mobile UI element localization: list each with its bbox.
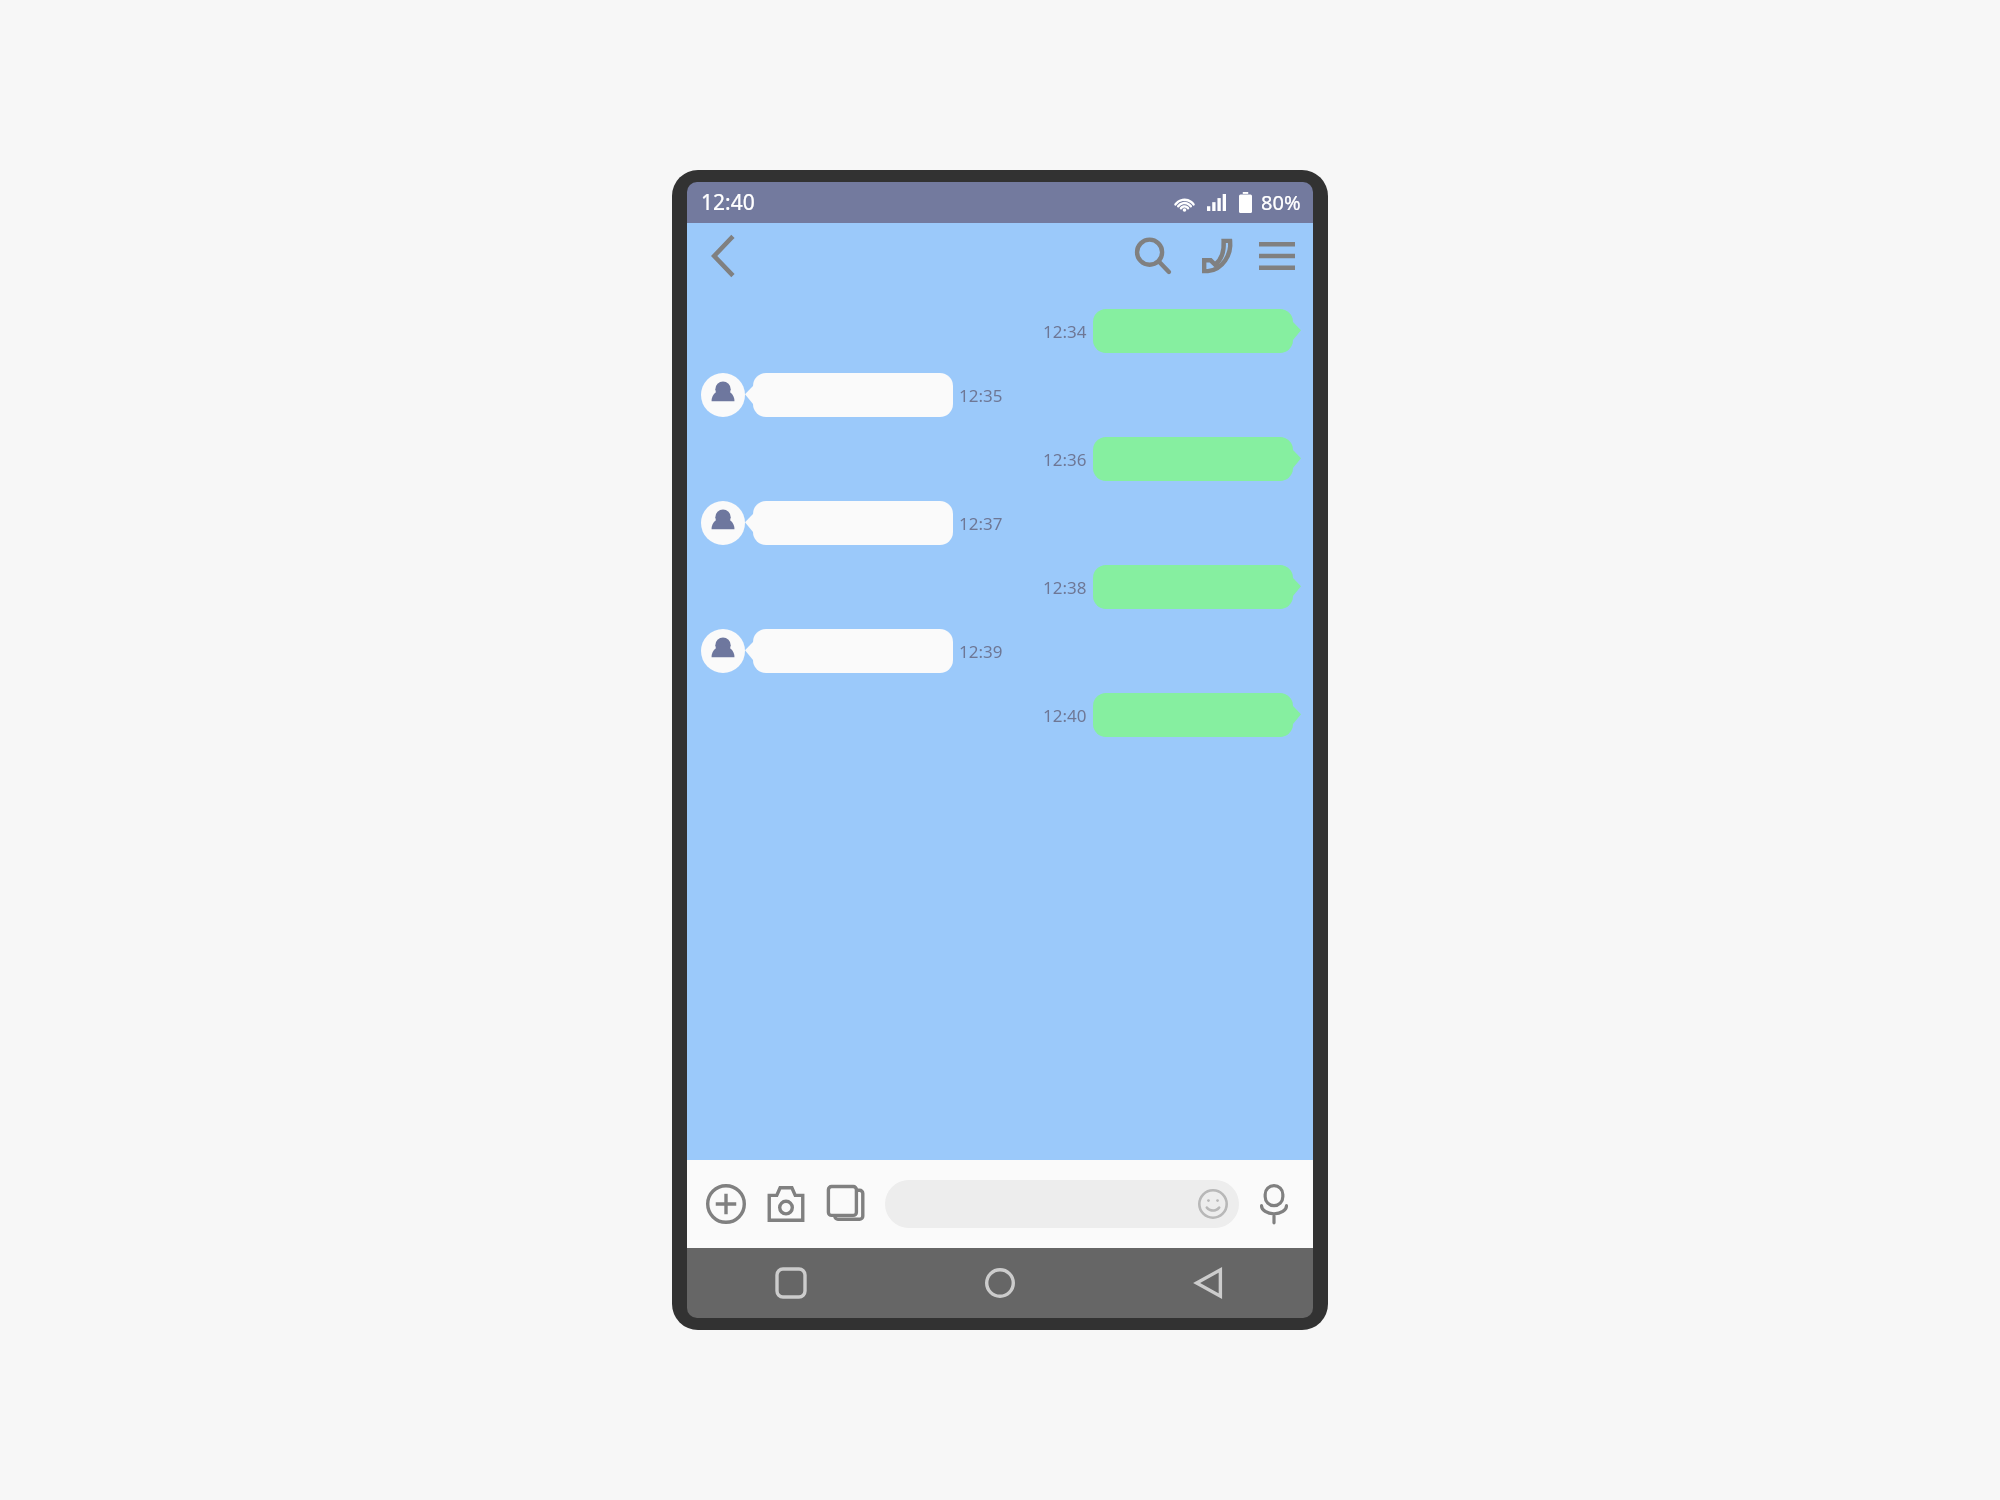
button[interactable]: Recents <box>687 1248 895 1318</box>
button[interactable]: 12:35 <box>701 373 1313 417</box>
button[interactable]: Message input <box>885 1180 1239 1228</box>
button[interactable]: 12:37 <box>701 501 1313 545</box>
button[interactable]: 12:38 <box>687 565 1313 609</box>
button[interactable]: 12:39 <box>701 629 1313 673</box>
button[interactable]: Back <box>699 232 747 280</box>
button[interactable]: Home <box>895 1248 1104 1318</box>
staticText: 80% <box>1261 189 1301 216</box>
button[interactable]: Add attachment <box>701 1179 751 1229</box>
button[interactable]: Gallery <box>821 1179 871 1229</box>
staticText: 12:34 <box>1043 320 1087 343</box>
staticText: 12:35 <box>959 384 1003 407</box>
staticText: 12:36 <box>1043 448 1087 471</box>
staticText: 12:37 <box>959 512 1003 535</box>
staticText: 12:39 <box>959 640 1003 663</box>
button[interactable]: Call <box>1189 230 1241 282</box>
button[interactable]: Menu <box>1251 230 1303 282</box>
staticText: 12:40 <box>701 188 755 217</box>
staticText: 12:40 <box>1043 704 1087 727</box>
button[interactable]: 12:36 <box>687 437 1313 481</box>
button[interactable]: 12:40 <box>687 693 1313 737</box>
button[interactable]: Emoji <box>1197 1188 1229 1220</box>
staticText: 12:38 <box>1043 576 1087 599</box>
button[interactable]: Back <box>1104 1248 1313 1318</box>
button[interactable]: Camera <box>761 1179 811 1229</box>
button[interactable]: 12:34 <box>687 309 1313 353</box>
button[interactable]: Voice message <box>1249 1179 1299 1229</box>
button[interactable]: Search <box>1127 230 1179 282</box>
